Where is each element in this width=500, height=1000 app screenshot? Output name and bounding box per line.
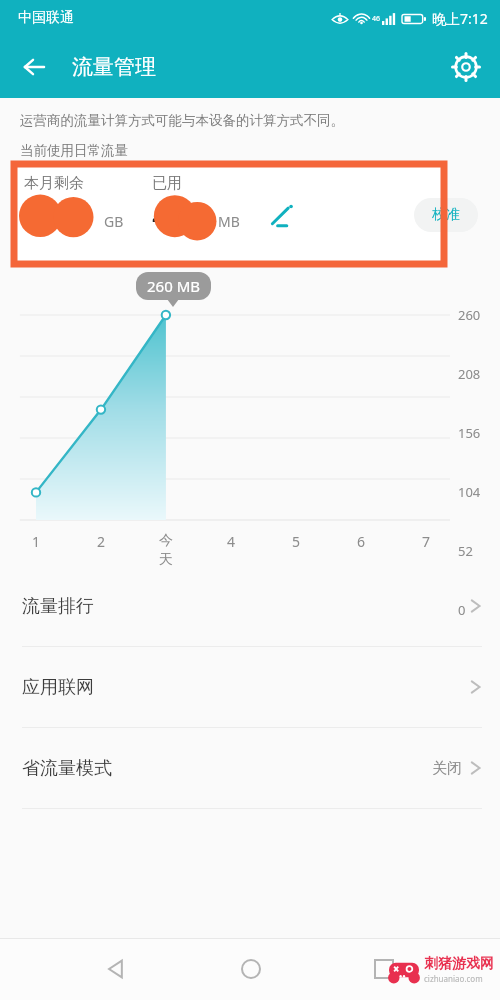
staticText: 关闭 xyxy=(432,759,462,778)
staticText: 1 xyxy=(24,532,48,551)
staticText: 2 xyxy=(89,532,113,551)
button[interactable]: 省流量模式 xyxy=(0,728,500,808)
staticText: 6 xyxy=(349,532,373,551)
staticText: 7 xyxy=(414,532,438,551)
staticText: 260 MB xyxy=(147,276,200,296)
staticText: 应用联网 xyxy=(22,676,94,699)
staticText: 208 xyxy=(458,365,481,383)
staticText: 流量管理 xyxy=(72,54,156,80)
staticText: MB xyxy=(218,212,240,231)
staticText: 46 xyxy=(372,14,381,24)
staticText: 刺猪游戏网 xyxy=(424,955,494,973)
staticText: 5 xyxy=(284,532,308,551)
button[interactable]: Back xyxy=(12,45,56,89)
staticText: 104 xyxy=(458,483,481,501)
staticText: 4 xyxy=(219,532,243,551)
staticText: 运营商的流量计算方式可能与本设备的计算方式不同。 xyxy=(20,112,344,129)
staticText: 中国联通 xyxy=(18,9,74,27)
staticText: 当前使用日常流量 xyxy=(20,142,128,159)
button[interactable]: Back xyxy=(50,938,184,1000)
staticText: 0 xyxy=(458,601,466,619)
staticText: 260 xyxy=(458,306,481,324)
staticText: cizhuaniao.com xyxy=(424,973,483,984)
staticText: 52 xyxy=(458,542,473,560)
button[interactable]: Settings xyxy=(444,45,488,89)
button[interactable]: 流量排行 xyxy=(0,566,500,646)
button[interactable]: Recent apps xyxy=(317,938,450,1000)
staticText: 校准 xyxy=(432,206,460,224)
staticText: 省流量模式 xyxy=(22,757,112,780)
button[interactable]: 应用联网 xyxy=(0,647,500,727)
staticText: 4 xyxy=(152,194,170,236)
button[interactable] xyxy=(14,164,444,264)
staticText: 流量排行 xyxy=(22,595,94,618)
staticText: 9 xyxy=(196,194,214,236)
staticText: 本月剩余 xyxy=(24,174,84,193)
staticText: 晚上7:12 xyxy=(432,9,488,28)
staticText: 已用 xyxy=(152,174,182,193)
button[interactable]: Home xyxy=(184,938,317,1000)
staticText: 156 xyxy=(458,424,481,442)
staticText: 7 xyxy=(73,194,91,236)
button[interactable]: 校准 xyxy=(414,198,478,232)
staticText: GB xyxy=(104,212,124,231)
staticText: 今天 xyxy=(154,532,178,568)
button[interactable]: Edit data plan xyxy=(262,198,300,236)
